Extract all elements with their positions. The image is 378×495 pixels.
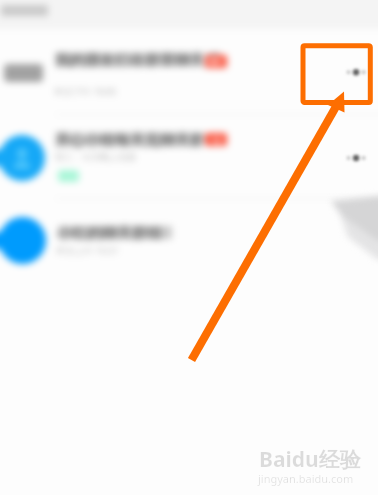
button[interactable] [0,200,378,278]
staticText: 小红的聊天群组 [57,224,162,243]
button[interactable] [0,118,378,196]
staticText: 开心小组每天见聊天群 [55,131,205,150]
button[interactable]: More options [333,57,378,87]
staticText: 12 [211,134,222,146]
button[interactable]: More options [333,143,378,173]
staticText: 张三：今天晚上见面 [55,151,136,162]
staticText: Baidu经验 [259,445,361,474]
button[interactable] [0,40,378,108]
staticText: 我的朋友们在群里聊天吧 [55,51,220,70]
staticText: jingyan.baidu.com [258,471,354,486]
staticText: 99+ [209,56,223,67]
